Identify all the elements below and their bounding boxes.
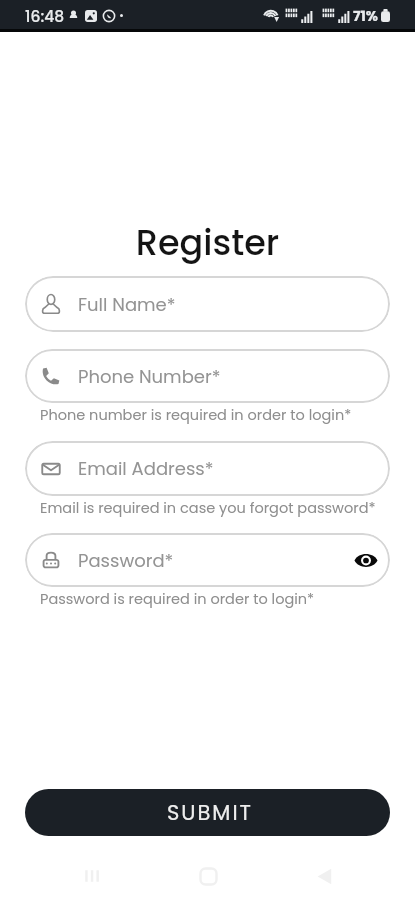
staticText: SUBMIT (167, 798, 253, 827)
staticText: Register (0, 218, 415, 267)
staticText: 16:48 (25, 6, 65, 28)
button[interactable]: Password* (25, 533, 390, 587)
staticText: Password is required in order to login* (40, 589, 415, 609)
button[interactable]: Full Name* (25, 276, 390, 332)
button[interactable]: Home (182, 852, 234, 900)
staticText: Full Name* (78, 292, 378, 317)
staticText: Password* (78, 548, 354, 573)
staticText: Email Address* (78, 456, 378, 481)
staticText: Email is required in case you forgot pas… (40, 498, 415, 518)
staticText: Phone Number* (78, 364, 378, 389)
staticText: 71% (353, 6, 378, 26)
button[interactable]: Show password (354, 548, 378, 572)
staticText: Phone number is required in order to log… (40, 405, 415, 425)
button[interactable]: Phone Number* (25, 349, 390, 403)
button[interactable]: Email Address* (25, 441, 390, 496)
button[interactable]: SUBMIT (25, 789, 390, 836)
